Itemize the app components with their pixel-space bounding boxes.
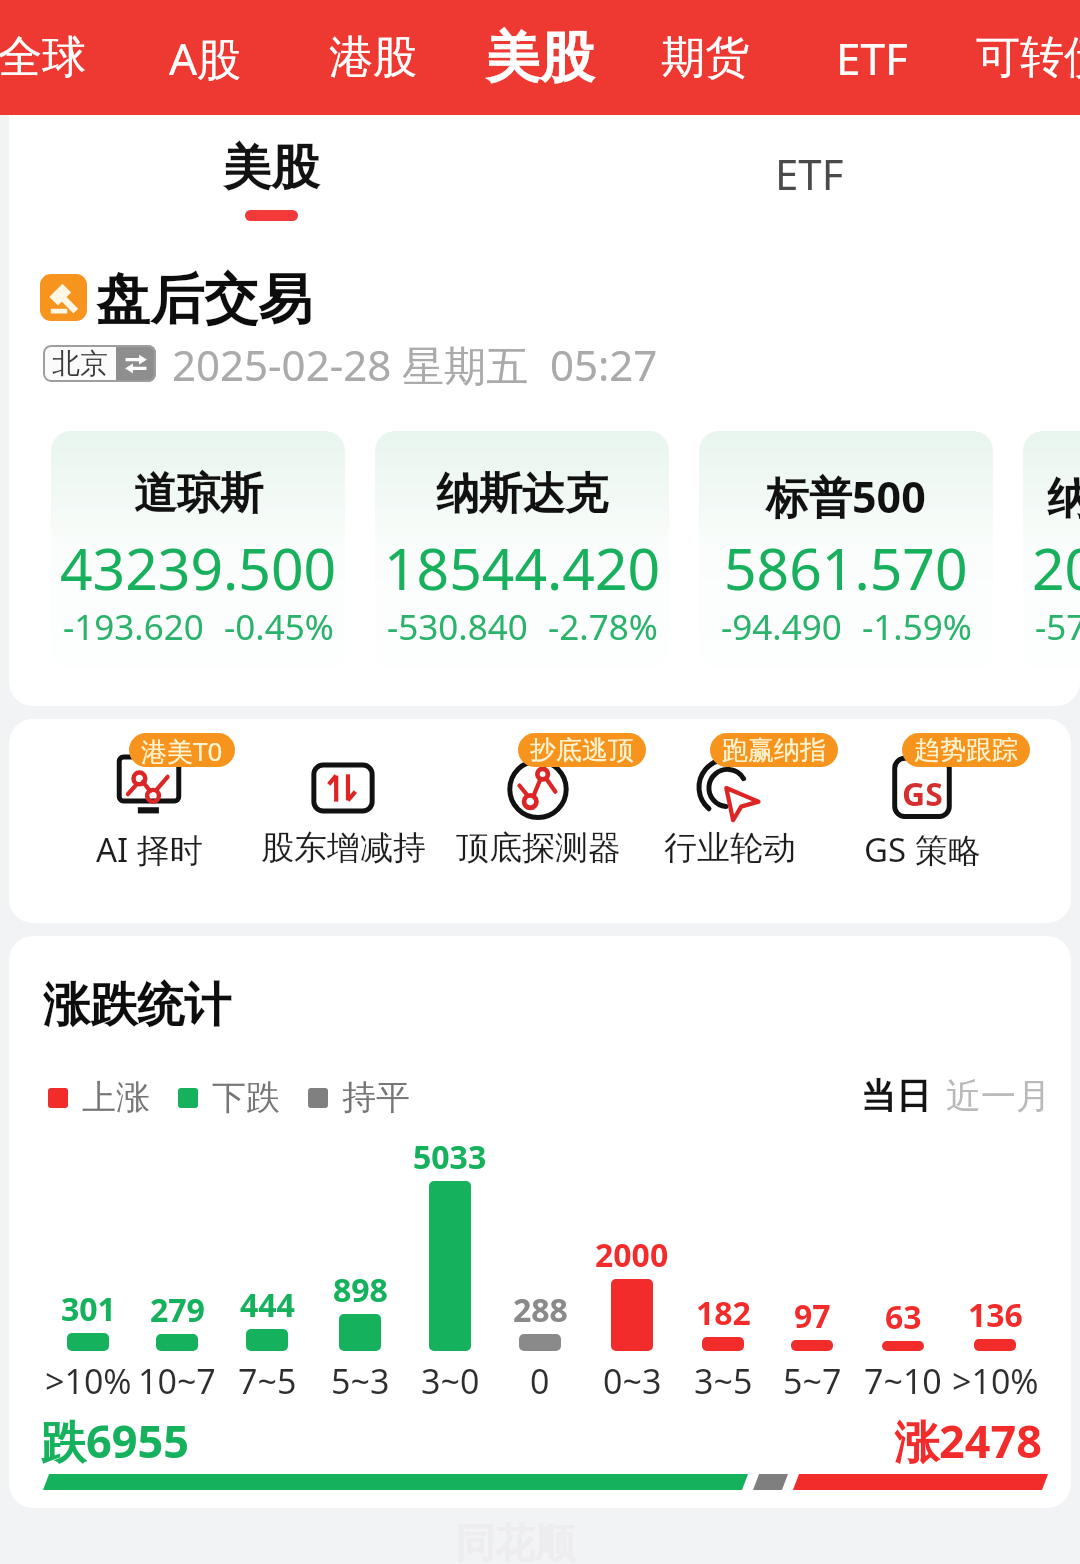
staticText: 7~5 xyxy=(238,1358,297,1404)
staticText: 下跌 xyxy=(212,1076,280,1119)
staticText: 涨2478 xyxy=(894,1410,1042,1471)
staticText: 5861.570 xyxy=(724,529,968,607)
staticText: 898 xyxy=(333,1268,388,1312)
staticText: ETF xyxy=(775,145,844,202)
staticText: 美股 xyxy=(223,138,319,198)
staticText: 279 xyxy=(150,1288,205,1332)
button[interactable]: 近一月 xyxy=(946,1074,1051,1118)
button[interactable]: 北京 xyxy=(43,345,156,382)
staticText: 跑赢纳指 xyxy=(722,734,826,767)
staticText: 期货 xyxy=(661,30,749,85)
staticText: 97 xyxy=(794,1294,831,1338)
button[interactable]: 当日 xyxy=(861,1074,931,1118)
staticText: 趋势跟踪 xyxy=(914,734,1018,767)
staticText: 纳斯达克100 xyxy=(1047,467,1080,526)
staticText: 3~5 xyxy=(694,1358,753,1404)
staticText: 301 xyxy=(61,1287,116,1331)
staticText: 3~0 xyxy=(421,1358,480,1404)
staticText: 182 xyxy=(696,1291,751,1335)
button[interactable]: 道琼斯 xyxy=(51,431,345,668)
staticText: -530.840 xyxy=(387,603,528,651)
staticText: 2000 xyxy=(595,1233,669,1277)
staticText: 43239.500 xyxy=(60,529,337,607)
button[interactable]: 美股 xyxy=(151,115,391,235)
staticText: 18544.420 xyxy=(384,529,661,607)
button[interactable]: 可转债 xyxy=(962,0,1080,115)
staticText: 近一月 xyxy=(946,1074,1051,1118)
staticText: -1.59% xyxy=(862,603,972,651)
staticText: -94.490 xyxy=(721,603,842,651)
button[interactable]: GS xyxy=(825,726,1019,896)
staticText: 纳斯达克 xyxy=(436,467,608,521)
staticText: 可转债 xyxy=(976,30,1080,85)
staticText: >10% xyxy=(952,1358,1039,1404)
staticText: 港股 xyxy=(329,30,417,85)
staticText: A股 xyxy=(169,28,242,88)
staticText: -193.620 xyxy=(63,603,204,651)
staticText: 63 xyxy=(885,1295,922,1339)
staticText: >10% xyxy=(45,1358,132,1404)
button[interactable]: ETF xyxy=(689,115,929,235)
staticText: 全球 xyxy=(0,30,86,85)
staticText: -573.590 xyxy=(1035,603,1080,651)
staticText: 5~3 xyxy=(331,1358,390,1404)
button[interactable]: 纳斯达克 xyxy=(375,431,669,668)
button[interactable]: 港美T0 xyxy=(52,726,246,896)
button[interactable]: ETF xyxy=(792,0,952,115)
staticText: 0~3 xyxy=(603,1358,662,1404)
button[interactable]: 美股 xyxy=(460,0,620,115)
button[interactable]: 纳斯达克100 xyxy=(1023,431,1080,668)
staticText: 北京 xyxy=(52,346,108,381)
staticText: 标普500 xyxy=(766,467,926,526)
button[interactable]: 股东增减持 xyxy=(246,726,440,896)
staticText: 股东增减持 xyxy=(261,827,426,869)
staticText: AI 择时 xyxy=(96,827,203,872)
staticText: 行业轮动 xyxy=(664,827,796,869)
staticText: ETF xyxy=(836,28,908,88)
button[interactable]: 跑赢纳指 xyxy=(633,726,827,896)
staticText: -2.78% xyxy=(548,603,658,651)
staticText: 持平 xyxy=(342,1076,410,1119)
staticText: 5~7 xyxy=(783,1358,842,1404)
staticText: 顶底探测器 xyxy=(456,827,621,869)
staticText: 7~10 xyxy=(864,1358,942,1404)
button[interactable]: 标普500 xyxy=(699,431,993,668)
staticText: GS xyxy=(902,772,943,816)
staticText: 2025-02-28 星期五 05:27 xyxy=(172,336,658,393)
staticText: 444 xyxy=(240,1283,295,1327)
other: Switch timezone xyxy=(123,351,149,377)
button[interactable]: 期货 xyxy=(625,0,785,115)
staticText: 港美T0 xyxy=(141,733,223,767)
staticText: 美股 xyxy=(486,24,594,92)
staticText: 道琼斯 xyxy=(134,467,263,521)
staticText: 抄底逃顶 xyxy=(530,734,634,767)
staticText: 上涨 xyxy=(82,1076,150,1119)
staticText: 盘后交易 xyxy=(96,266,312,334)
staticText: 0 xyxy=(530,1358,550,1404)
button[interactable]: 抄底逃顶 xyxy=(441,726,635,896)
button[interactable]: A股 xyxy=(125,0,285,115)
staticText: 20884.330 xyxy=(1032,529,1080,607)
staticText: -0.45% xyxy=(224,603,334,651)
staticText: 136 xyxy=(968,1293,1023,1337)
button[interactable]: 全球 xyxy=(0,0,122,115)
staticText: GS 策略 xyxy=(864,827,981,872)
staticText: 当日 xyxy=(861,1074,931,1118)
staticText: 10~7 xyxy=(138,1358,216,1404)
staticText: 跌6955 xyxy=(41,1410,189,1471)
staticText: 5033 xyxy=(413,1135,487,1179)
button[interactable]: 港股 xyxy=(293,0,453,115)
staticText: 288 xyxy=(513,1288,568,1332)
staticText: 涨跌统计 xyxy=(43,976,231,1035)
